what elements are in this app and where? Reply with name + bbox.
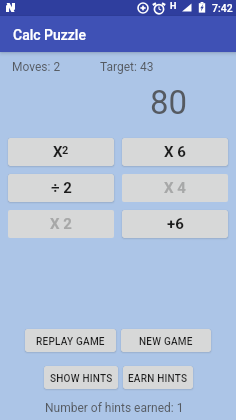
staticText: X 2 [50, 215, 72, 233]
staticText: ÷ 2 [51, 179, 72, 197]
staticText: X 6 [164, 143, 186, 161]
staticText: H [170, 1, 177, 12]
button[interactable]: EARN HINTS [123, 366, 193, 389]
button[interactable]: X 6 [122, 138, 228, 166]
staticText: 80 [150, 83, 188, 122]
button[interactable]: SHOW HINTS [44, 366, 118, 389]
staticText: Target: 43 [100, 60, 154, 74]
staticText: 2 [62, 144, 69, 157]
staticText: EARN HINTS [128, 373, 188, 385]
button[interactable]: X 4 [122, 174, 228, 202]
button[interactable]: X [8, 138, 114, 166]
staticText: X 4 [164, 179, 186, 197]
staticText: Number of hints earned: 1 [45, 401, 184, 415]
staticText: X [53, 143, 63, 161]
staticText: REPLAY GAME [36, 336, 105, 348]
staticText: Calc Puzzle [13, 27, 86, 43]
button[interactable]: ÷ 2 [8, 174, 114, 202]
button[interactable]: NEW GAME [121, 329, 211, 352]
staticText: SHOW HINTS [50, 373, 113, 385]
button[interactable]: +6 [122, 210, 228, 238]
staticText: Moves: 2 [12, 60, 61, 74]
button[interactable]: REPLAY GAME [25, 329, 116, 352]
staticText: NEW GAME [139, 336, 193, 348]
button[interactable]: X 2 [8, 210, 114, 238]
staticText: 7:42 [212, 2, 233, 14]
staticText: +6 [167, 215, 184, 233]
